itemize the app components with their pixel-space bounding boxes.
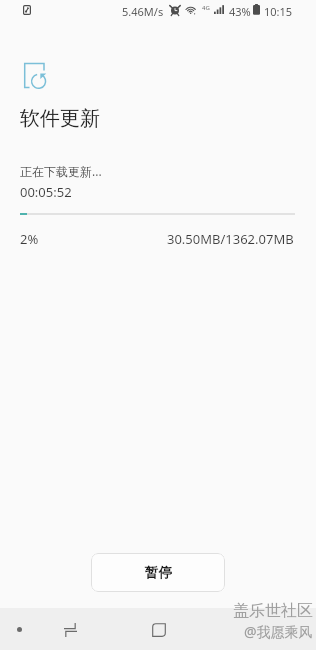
staticText: 2% bbox=[20, 230, 39, 248]
staticText: 暂停 bbox=[145, 564, 172, 581]
staticText: 10:15 bbox=[264, 4, 293, 19]
button[interactable]: 暂停 bbox=[91, 553, 225, 592]
button[interactable]: Home bbox=[146, 617, 171, 642]
staticText: 43% bbox=[229, 4, 251, 19]
staticText: @我愿乘风 bbox=[244, 622, 313, 641]
staticText: 软件更新 bbox=[20, 106, 100, 131]
button[interactable]: Recents bbox=[58, 617, 83, 642]
staticText: 00:05:52 bbox=[20, 183, 72, 201]
staticText: 盖乐世社区 bbox=[233, 601, 313, 621]
button[interactable]: Back bbox=[7, 617, 32, 642]
staticText: 正在下载更新... bbox=[20, 163, 102, 179]
staticText: 30.50MB/1362.07MB bbox=[167, 230, 294, 248]
staticText: 5.46M/s bbox=[122, 4, 164, 19]
staticText: 4G bbox=[202, 4, 210, 12]
